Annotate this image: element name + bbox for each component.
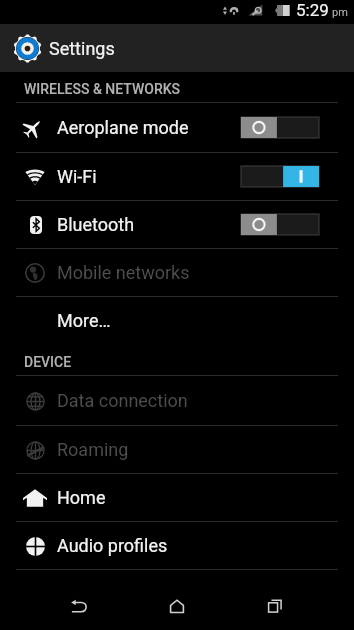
- staticText: Settings: [49, 38, 115, 59]
- button[interactable]: Bluetooth: [0, 201, 354, 248]
- staticText: pm: [332, 6, 348, 19]
- button[interactable]: Settings: [0, 24, 354, 72]
- button[interactable]: Home: [147, 582, 207, 630]
- staticText: More…: [57, 310, 111, 331]
- staticText: Wi-Fi: [57, 166, 97, 187]
- button[interactable]: Off: [241, 117, 319, 138]
- button[interactable]: Off: [241, 214, 319, 235]
- button[interactable]: Back: [49, 582, 109, 630]
- button[interactable]: On: [241, 166, 319, 187]
- staticText: WIRELESS & NETWORKS: [24, 81, 181, 97]
- button[interactable]: Data connection: [0, 376, 354, 425]
- button[interactable]: Home: [0, 474, 354, 521]
- staticText: Bluetooth: [57, 214, 135, 235]
- button[interactable]: More…: [0, 297, 354, 344]
- button[interactable]: Wi-Fi: [0, 153, 354, 200]
- staticText: Audio profiles: [57, 535, 168, 556]
- staticText: 5:29: [296, 0, 329, 20]
- staticText: Mobile networks: [57, 262, 190, 283]
- staticText: Roaming: [57, 439, 129, 460]
- staticText: Aeroplane mode: [57, 117, 189, 138]
- staticText: Data connection: [57, 390, 188, 411]
- button[interactable]: Recent apps: [245, 582, 305, 630]
- button[interactable]: Aeroplane mode: [0, 103, 354, 152]
- button[interactable]: Mobile networks: [0, 249, 354, 296]
- staticText: Home: [57, 487, 106, 508]
- button[interactable]: Audio profiles: [0, 522, 354, 569]
- button[interactable]: Roaming: [0, 426, 354, 473]
- staticText: DEVICE: [24, 354, 72, 370]
